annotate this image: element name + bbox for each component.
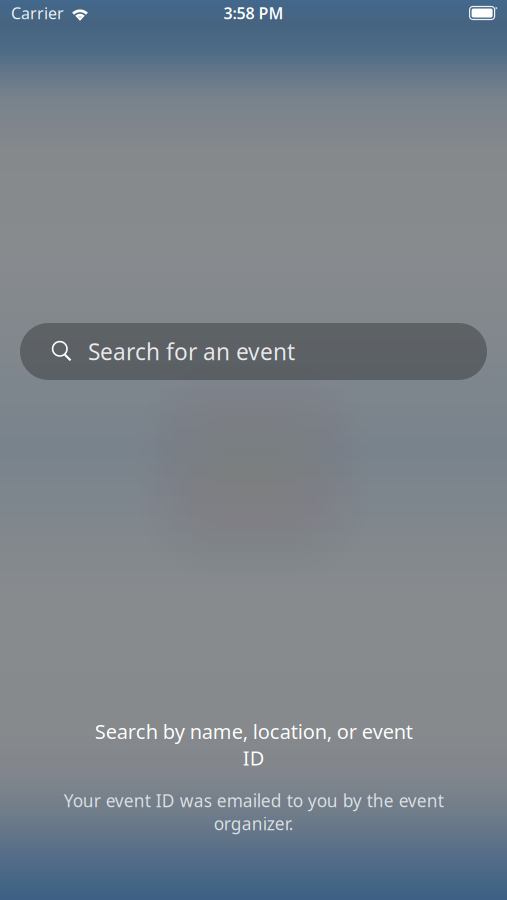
staticText: Carrier xyxy=(11,2,64,24)
button[interactable]: Search for an event xyxy=(20,323,487,380)
staticText: 3:58 PM xyxy=(223,2,283,24)
staticText: Search for an event xyxy=(88,336,295,366)
staticText: Your event ID was emailed to you by the … xyxy=(63,789,443,835)
staticText: Search by name, location, or event ID xyxy=(94,718,412,771)
